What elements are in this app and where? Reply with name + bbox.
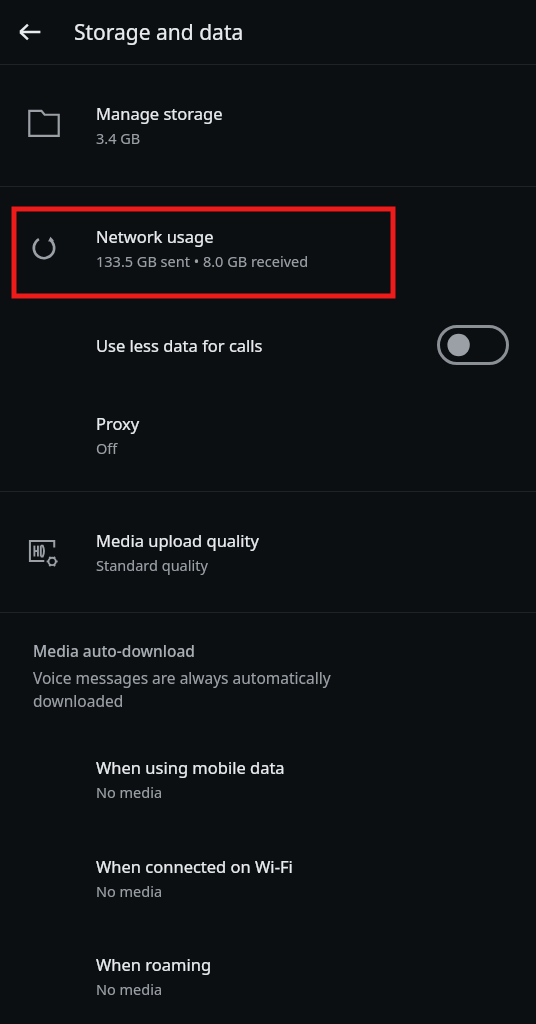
button[interactable]: When roaming <box>0 927 536 1024</box>
button[interactable]: When connected on Wi-Fi <box>0 828 536 927</box>
staticText: No media <box>96 979 163 999</box>
button[interactable]: Proxy <box>0 379 536 491</box>
button[interactable]: When using mobile data <box>0 730 536 828</box>
staticText: Use less data for calls <box>96 334 263 356</box>
button[interactable]: Media upload quality <box>0 491 536 612</box>
staticText: No media <box>96 881 163 901</box>
staticText: When using mobile data <box>96 756 285 778</box>
button[interactable]: Network usage <box>0 186 536 310</box>
staticText: 3.4 GB <box>96 128 141 148</box>
staticText: Media auto-download <box>33 640 195 661</box>
button[interactable]: Manage storage <box>0 64 536 186</box>
staticText: Standard quality <box>96 555 208 575</box>
staticText: When connected on Wi-Fi <box>96 855 293 877</box>
staticText: No media <box>96 782 163 802</box>
staticText: Off <box>96 438 118 458</box>
staticText: 133.5 GB sent • 8.0 GB received <box>96 251 309 271</box>
staticText: Network usage <box>96 225 214 247</box>
staticText: Media upload quality <box>96 529 259 551</box>
button[interactable]: Use less data for calls <box>0 310 536 379</box>
staticText: Voice messages are always automatically … <box>33 667 423 712</box>
staticText: Storage and data <box>74 18 244 47</box>
button[interactable]: Back <box>6 8 54 56</box>
staticText: When roaming <box>96 953 212 975</box>
staticText: Proxy <box>96 412 140 434</box>
staticText: Manage storage <box>96 102 223 124</box>
